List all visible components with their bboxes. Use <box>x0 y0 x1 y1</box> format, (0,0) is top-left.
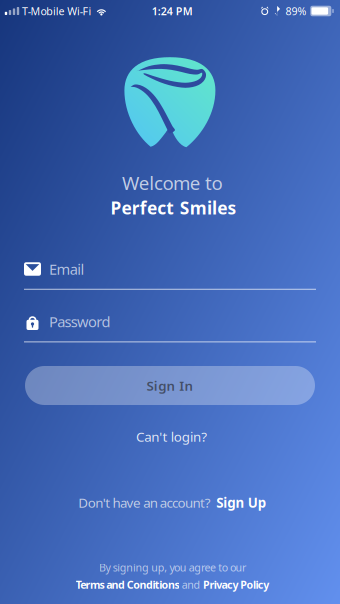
button[interactable]: Privacy Policy <box>203 577 269 592</box>
staticText: Welcome to <box>122 170 222 195</box>
staticText: Password <box>49 312 110 331</box>
staticText: 89% <box>285 4 306 18</box>
staticText: Privacy Policy <box>203 577 269 592</box>
staticText: Sign Up <box>216 494 266 511</box>
staticText: Can't login? <box>136 428 207 445</box>
staticText: Don't have an account? <box>78 494 211 511</box>
staticText: Perfect Smiles <box>110 196 236 219</box>
staticText: By signing up, you agree to our <box>99 560 246 574</box>
button[interactable]: Password <box>24 312 316 342</box>
staticText: 1:24 PM <box>152 4 193 18</box>
button[interactable]: Can't login? <box>112 423 232 449</box>
staticText: Sign In <box>146 377 194 394</box>
staticText: Email <box>49 259 85 279</box>
button[interactable]: Email <box>24 260 316 290</box>
staticText: T-Mobile Wi-Fi <box>22 4 91 18</box>
button[interactable]: Terms and Conditions <box>76 577 179 592</box>
staticText: Terms and Conditions <box>76 577 179 592</box>
staticText: and <box>179 577 203 592</box>
button[interactable]: Sign In <box>25 366 315 405</box>
button[interactable]: Don't have an account? <box>72 489 272 515</box>
